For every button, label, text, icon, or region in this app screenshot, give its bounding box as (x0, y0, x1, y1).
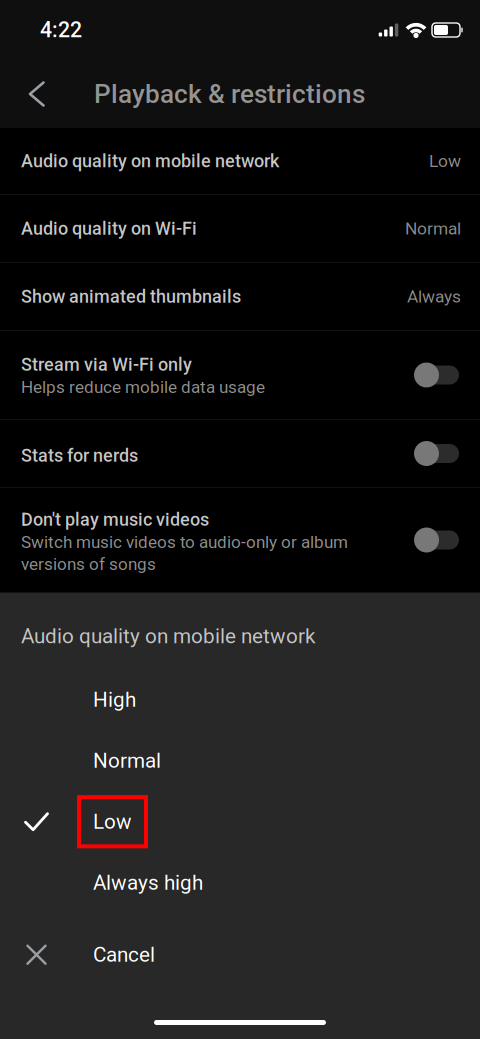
button[interactable]: Cancel (0, 924, 480, 985)
staticText: Show animated thumbnails (21, 286, 241, 307)
staticText: versions of songs (21, 554, 156, 574)
staticText: Don't play music videos (21, 509, 209, 530)
button[interactable]: Stream via Wi-Fi only (0, 331, 480, 420)
staticText: Switch music videos to audio-only or alb… (21, 532, 348, 552)
button[interactable]: Audio quality on mobile network (0, 128, 480, 195)
staticText: Low (93, 810, 132, 834)
button[interactable]: Back (15, 60, 59, 128)
button[interactable]: Normal (0, 730, 480, 791)
staticText: Normal (405, 218, 461, 239)
staticText: Cancel (93, 943, 155, 967)
staticText: Stats for nerds (21, 445, 138, 466)
staticText: Audio quality on mobile network (21, 624, 315, 648)
staticText: Always (407, 286, 461, 307)
button[interactable]: Show animated thumbnails (0, 263, 480, 331)
button[interactable]: Always high (0, 852, 480, 913)
staticText: Always high (93, 871, 203, 895)
staticText: Stream via Wi-Fi only (21, 354, 192, 375)
staticText: Audio quality on Wi-Fi (21, 218, 197, 239)
button[interactable]: Low (0, 791, 480, 852)
button[interactable]: Stats for nerds (0, 420, 480, 488)
staticText: Helps reduce mobile data usage (21, 377, 265, 397)
button[interactable]: Don't play music videos (0, 488, 480, 593)
button[interactable]: High (0, 669, 480, 730)
staticText: Playback & restrictions (94, 79, 365, 109)
staticText: Normal (93, 749, 161, 773)
button[interactable]: Audio quality on Wi-Fi (0, 195, 480, 263)
staticText: Low (429, 151, 461, 171)
staticText: 4:22 (40, 17, 82, 42)
staticText: Audio quality on mobile network (21, 150, 279, 172)
staticText: High (93, 688, 136, 712)
